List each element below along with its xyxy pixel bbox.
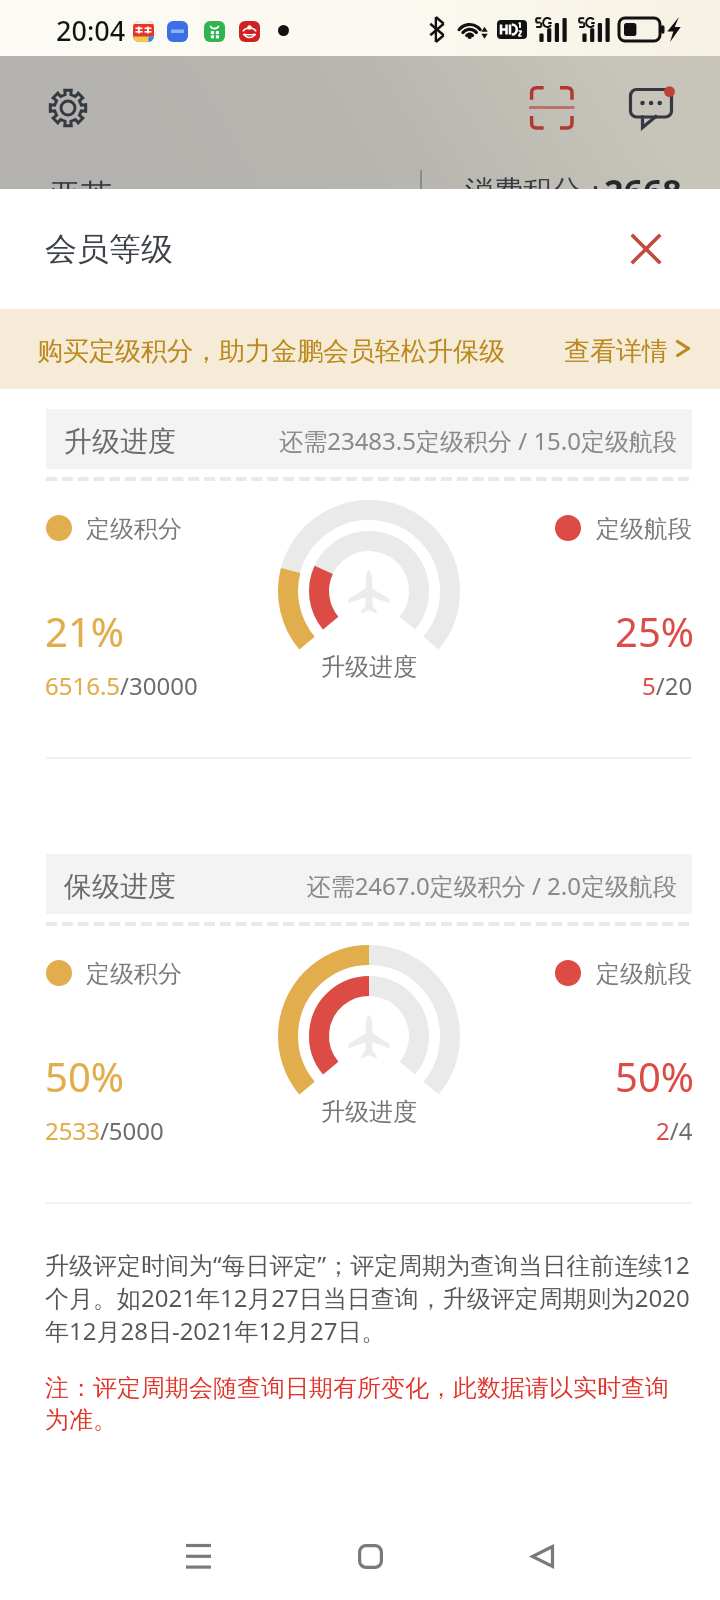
button[interactable]: Settings [38, 78, 98, 138]
staticText: 升级进度 [321, 652, 417, 682]
staticText: 2668 [604, 168, 682, 214]
staticText: 2533/5000 [45, 1114, 164, 1147]
staticText: 查看详情 [564, 335, 668, 368]
staticText: 20:04 [56, 12, 126, 49]
staticText: 定级航段 [596, 514, 692, 544]
staticText: 50% [615, 1049, 694, 1103]
button[interactable]: Close [614, 217, 678, 281]
staticText: 6516.5/30000 [45, 669, 198, 702]
button[interactable]: Back [502, 1516, 582, 1596]
staticText: 购买定级积分，助力金鹏会员轻松升保级 [37, 335, 505, 368]
staticText: 消费积分： [465, 173, 610, 210]
staticText: 注：评定周期会随查询日期有所变化，此数据请以实时查询为准。 [45, 1373, 691, 1435]
staticText: 定级积分 [86, 514, 182, 544]
staticText: 亚英 [50, 176, 112, 215]
staticText: 会员等级 [45, 229, 173, 269]
button[interactable]: Home [330, 1516, 410, 1596]
staticText: 定级航段 [596, 959, 692, 989]
staticText: 2/4 [656, 1114, 693, 1147]
button[interactable]: Recents [158, 1516, 238, 1596]
button[interactable]: Messages [620, 79, 680, 139]
staticText: 还需23483.5定级积分 / 15.0定级航段 [0, 424, 677, 457]
staticText: 5/20 [642, 669, 693, 702]
staticText: 升级评定时间为“每日评定”；评定周期为查询当日往前连续12个月。如2021年12… [45, 1248, 691, 1347]
staticText: 25% [615, 604, 694, 658]
staticText: 21% [45, 604, 124, 658]
staticText: 定级积分 [86, 959, 182, 989]
staticText: 升级进度 [64, 424, 176, 459]
button[interactable]: Scan [521, 78, 583, 140]
staticText: 还需2467.0定级积分 / 2.0定级航段 [0, 869, 677, 902]
staticText: 保级进度 [64, 869, 176, 904]
staticText: 升级进度 [321, 1097, 417, 1127]
button[interactable]: 购买定级积分，助力金鹏会员轻松升保级 [0, 309, 720, 389]
staticText: 50% [45, 1049, 124, 1103]
